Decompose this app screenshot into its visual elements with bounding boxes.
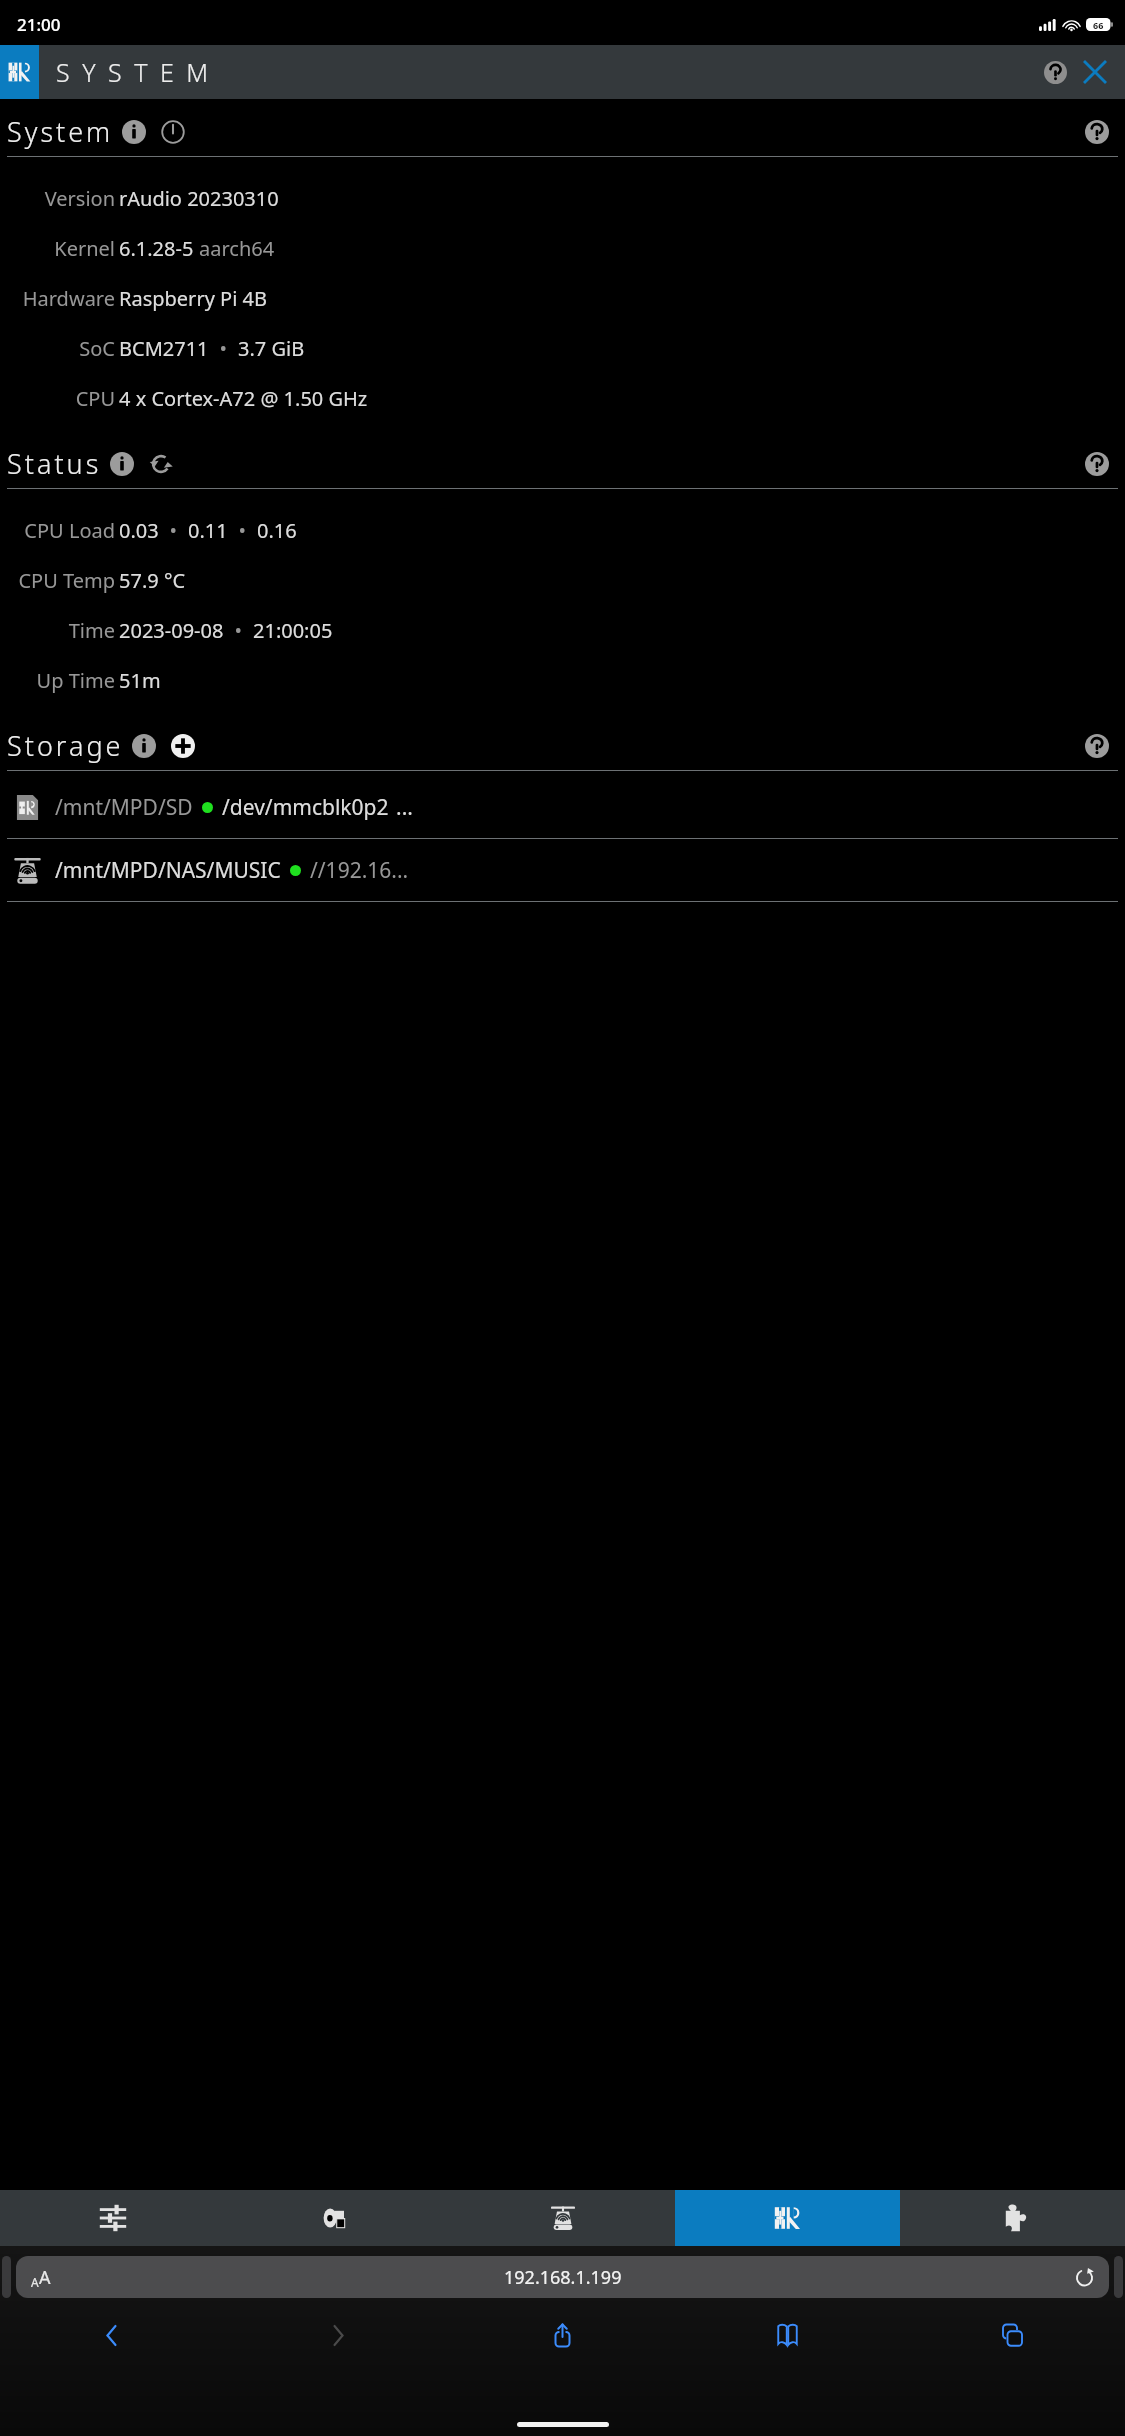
staticText: 0.16 bbox=[257, 517, 297, 544]
staticText: CPU bbox=[0, 385, 115, 412]
button[interactable]: Help bbox=[1081, 730, 1113, 762]
staticText: SoC bbox=[0, 335, 115, 362]
button[interactable]: Help bbox=[1081, 448, 1113, 480]
button[interactable]: Refresh bbox=[146, 449, 176, 479]
button[interactable]: Power bbox=[158, 117, 188, 147]
staticText: Storage bbox=[7, 727, 124, 764]
staticText: BCM2711 bbox=[119, 335, 209, 362]
staticText: Raspberry Pi 4B bbox=[119, 285, 267, 312]
button[interactable]: Forward bbox=[225, 2312, 450, 2358]
staticText: //192.16... bbox=[310, 856, 409, 885]
button[interactable]: Playback bbox=[225, 2190, 450, 2246]
button[interactable]: Share bbox=[450, 2312, 675, 2358]
staticText: 21:00:05 bbox=[253, 617, 333, 644]
staticText: • bbox=[224, 617, 253, 644]
staticText: aarch64 bbox=[199, 235, 275, 262]
staticText: 2023-09-08 bbox=[119, 617, 224, 644]
button[interactable]: Network bbox=[450, 2190, 675, 2246]
button[interactable]: Help bbox=[1081, 116, 1113, 148]
staticText: Time bbox=[0, 617, 115, 644]
staticText: Kernel bbox=[0, 235, 115, 262]
staticText: 3.7 GiB bbox=[238, 335, 305, 362]
other: Reload bbox=[1075, 2268, 1094, 2287]
staticText: 21:00 bbox=[17, 13, 61, 36]
staticText: CPU Load bbox=[0, 517, 115, 544]
staticText: CPU Temp bbox=[0, 567, 115, 594]
staticText: /mnt/MPD/SD bbox=[55, 793, 193, 822]
staticText: 66 bbox=[1093, 19, 1104, 31]
staticText: S Y S T E M bbox=[56, 55, 212, 89]
button[interactable]: /mnt/MPD/SD bbox=[0, 776, 1125, 838]
staticText: 51m bbox=[119, 667, 161, 694]
button[interactable]: A bbox=[16, 2256, 1109, 2298]
button[interactable]: System bbox=[675, 2190, 900, 2246]
staticText: 0.03 bbox=[119, 517, 159, 544]
staticText: 192.168.1.199 bbox=[504, 2265, 622, 2290]
staticText: 6.1.28-5 bbox=[119, 235, 199, 262]
button[interactable]: Back bbox=[0, 2312, 225, 2358]
button[interactable]: Bookmarks bbox=[675, 2312, 900, 2358]
staticText: ... bbox=[396, 793, 413, 822]
button[interactable]: /mnt/MPD/NAS/MUSIC bbox=[0, 839, 1125, 901]
staticText: Version bbox=[0, 185, 115, 212]
button[interactable]: Plugins bbox=[900, 2190, 1125, 2246]
staticText: /mnt/MPD/NAS/MUSIC bbox=[55, 856, 281, 885]
button[interactable]: Help bbox=[1035, 52, 1075, 92]
staticText: • bbox=[209, 335, 238, 362]
button[interactable]: Tabs bbox=[900, 2312, 1125, 2358]
staticText: 4 x Cortex-A72 @ 1.50 GHz bbox=[119, 385, 368, 412]
button[interactable]: Close bbox=[1075, 52, 1115, 92]
staticText: rAudio 20230310 bbox=[119, 185, 279, 212]
staticText: • bbox=[228, 517, 257, 544]
button[interactable]: Settings bbox=[0, 2190, 225, 2246]
staticText: • bbox=[159, 517, 188, 544]
staticText: 57.9 °C bbox=[119, 567, 186, 594]
button[interactable]: Information bbox=[119, 117, 149, 147]
button[interactable]: rAudio home bbox=[0, 45, 39, 99]
staticText: Up Time bbox=[0, 667, 115, 694]
staticText: A bbox=[39, 2265, 51, 2290]
staticText: A bbox=[31, 2274, 39, 2290]
staticText: /dev/mmcblk0p2 bbox=[222, 793, 389, 822]
staticText: System bbox=[7, 113, 114, 150]
staticText: Status bbox=[7, 445, 102, 482]
button[interactable]: Information bbox=[129, 731, 159, 761]
staticText: 0.11 bbox=[188, 517, 228, 544]
button[interactable]: Add mount bbox=[168, 731, 198, 761]
button[interactable]: Information bbox=[107, 449, 137, 479]
staticText: Hardware bbox=[0, 285, 115, 312]
